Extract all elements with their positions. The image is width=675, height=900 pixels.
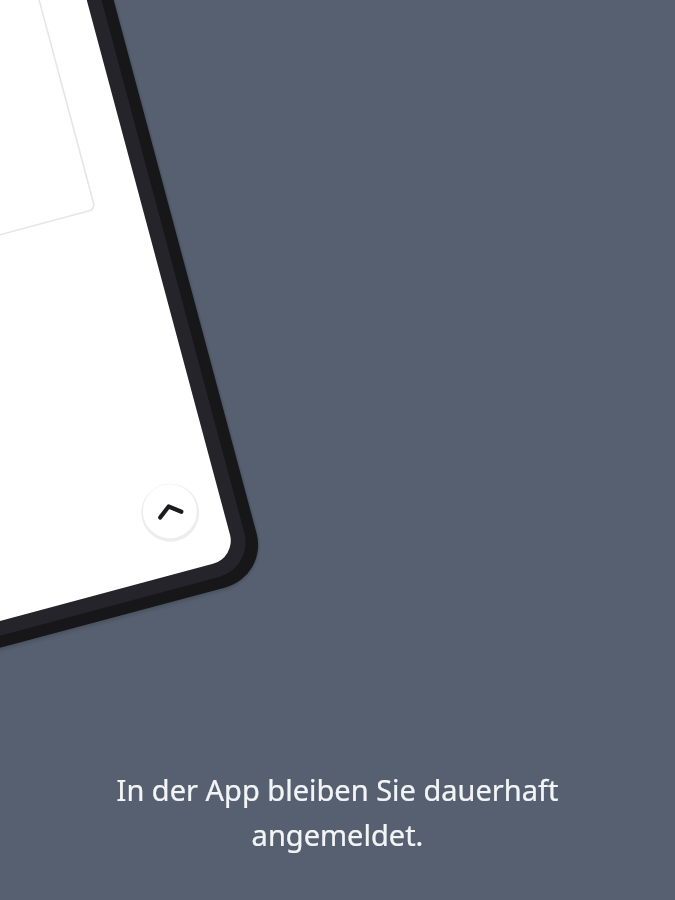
staticText: In der App bleiben Sie dauerhaft angemel… (52, 770, 623, 855)
button[interactable]: Tablet app preview (0, 0, 675, 900)
